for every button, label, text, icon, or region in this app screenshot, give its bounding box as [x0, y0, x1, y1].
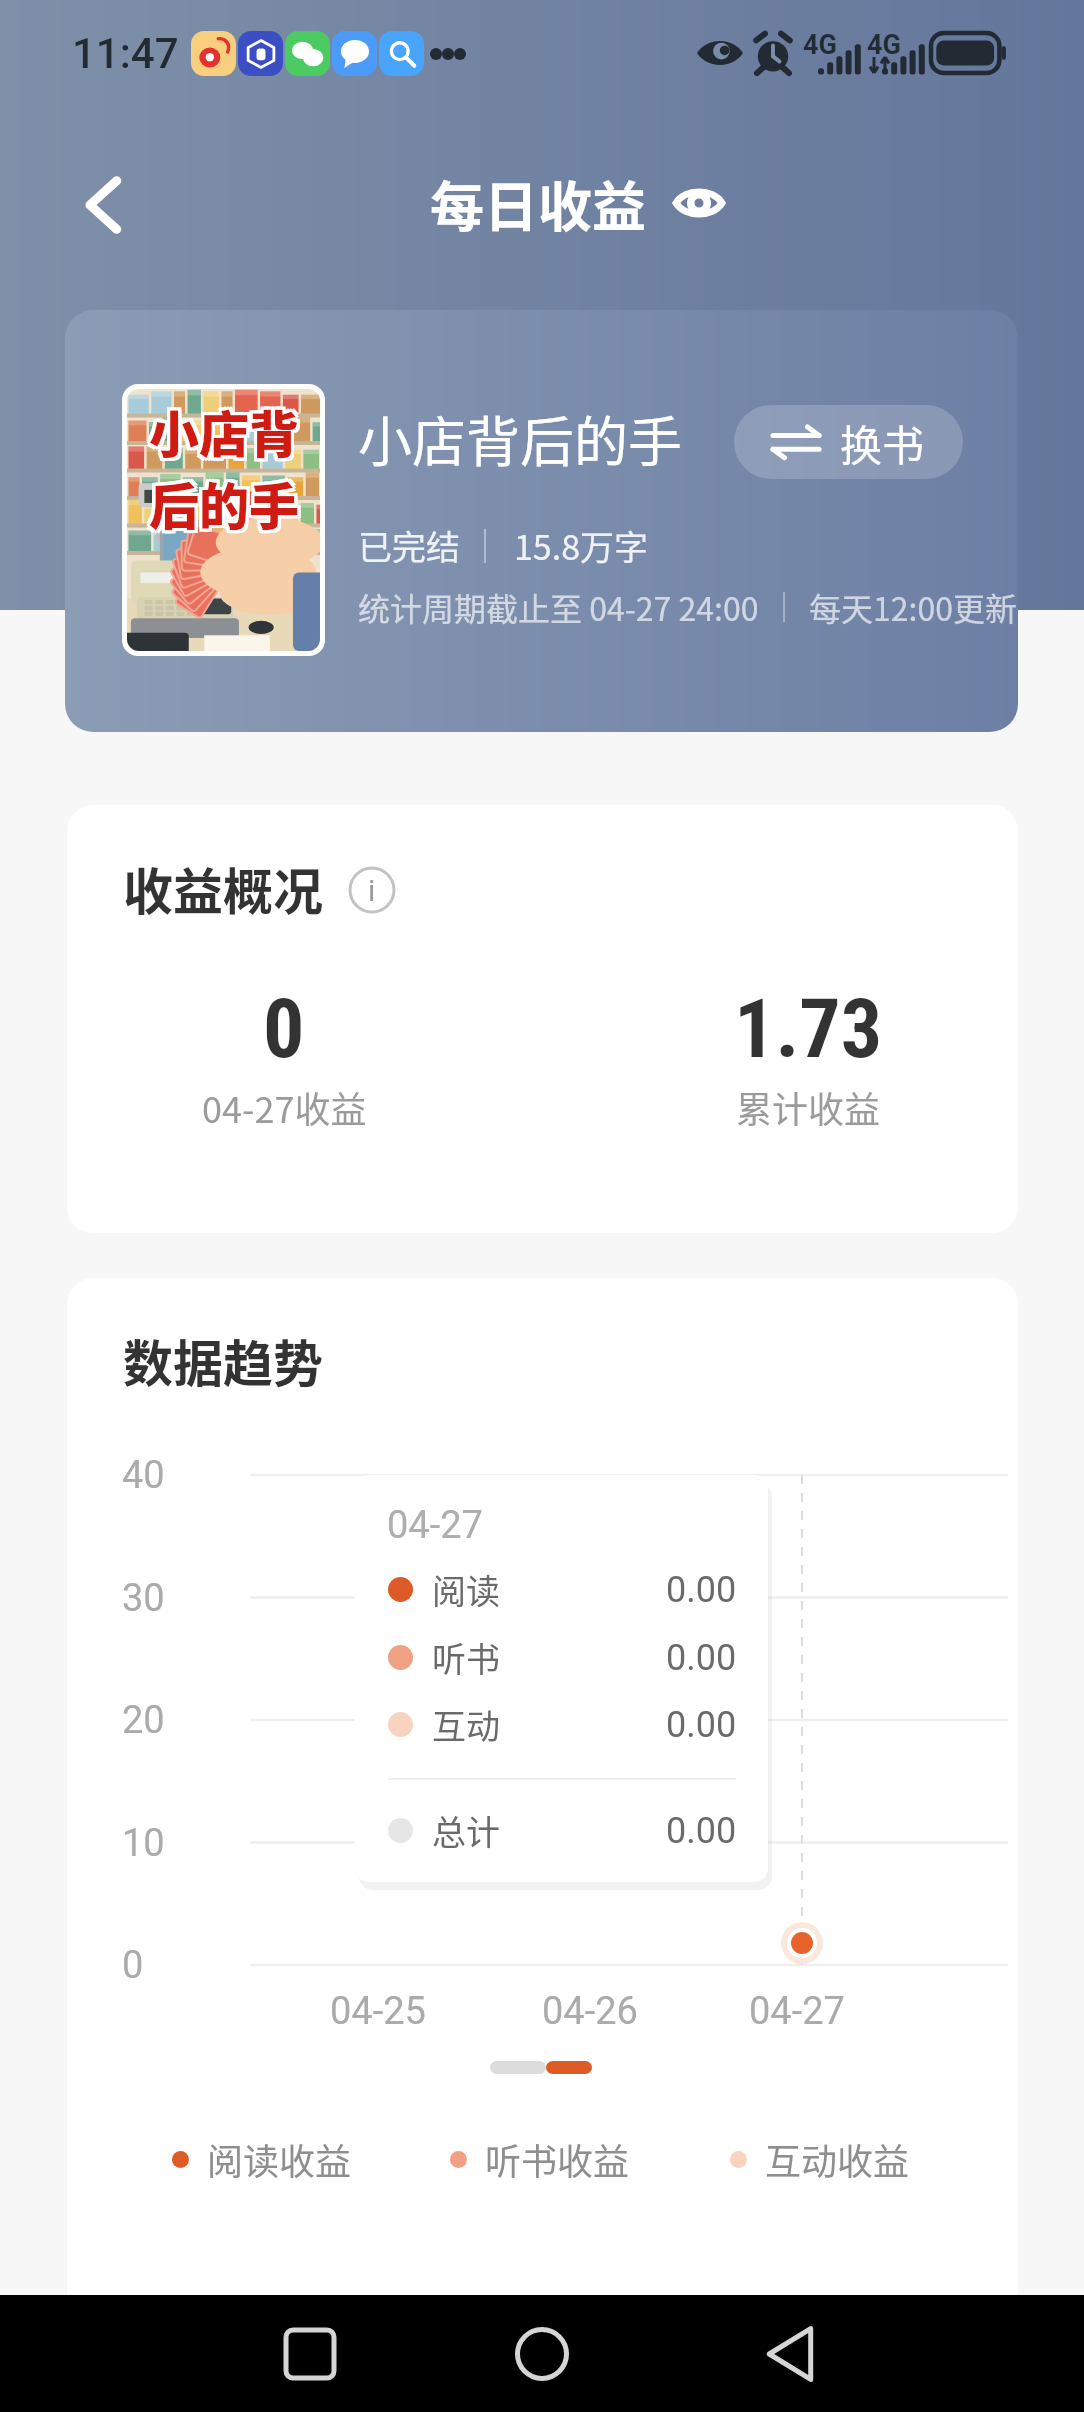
button[interactable]: 小店背 [65, 310, 1018, 732]
staticText: 0.00 [666, 1569, 737, 1611]
staticText: 0.00 [666, 1810, 737, 1852]
staticText: 互动 [432, 1700, 500, 1749]
staticText: 小店背 [149, 395, 299, 467]
button[interactable]: 换书 [734, 405, 963, 479]
staticText: i [368, 873, 376, 908]
button[interactable]: Home [499, 2311, 585, 2397]
staticText: 小店背 [146, 392, 296, 464]
staticText: 0.00 [666, 1704, 737, 1746]
staticText: 15.8万字 [514, 521, 649, 570]
staticText: 4G [803, 29, 837, 61]
staticText: 小店背 [152, 395, 302, 467]
staticText: 40 [122, 1453, 165, 1498]
staticText: 数据趋势 [123, 1324, 323, 1396]
staticText: 后的手 [149, 467, 299, 539]
staticText: 小店背 [149, 392, 299, 464]
staticText: 1.73 [734, 981, 883, 1077]
staticText: 听书收益 [485, 2133, 630, 2185]
staticText: 10 [122, 1821, 165, 1866]
staticText: 04-25 [330, 1989, 426, 2034]
staticText: 04-27 [387, 1503, 483, 1548]
staticText: 阅读收益 [207, 2133, 352, 2185]
staticText: 11:47 [72, 29, 179, 78]
button[interactable]: Back [72, 173, 136, 237]
staticText: 阅读 [432, 1565, 500, 1614]
staticText: 小店背 [149, 398, 299, 470]
staticText: 听书 [432, 1633, 500, 1682]
staticText: 后的手 [152, 467, 302, 539]
button[interactable]: Recent apps [267, 2311, 353, 2397]
staticText: 每天12:00更新 [809, 584, 1017, 630]
staticText: 30 [122, 1576, 165, 1621]
staticText: 互动收益 [765, 2133, 910, 2185]
staticText: 0 [263, 981, 305, 1077]
staticText: 后的手 [152, 464, 302, 536]
staticText: 后的手 [149, 470, 299, 542]
staticText: 后的手 [152, 470, 302, 542]
staticText: 小店背 [146, 398, 296, 470]
staticText: 换书 [840, 412, 925, 473]
staticText: 每日收益 [430, 164, 646, 242]
button[interactable]: Back [747, 2311, 833, 2397]
staticText: 小店背 [152, 392, 302, 464]
staticText: 统计周期截止至 04-27 24:00 [358, 584, 759, 630]
button[interactable]: Toggle earnings visibility [674, 185, 724, 221]
staticText: 已完结 [358, 521, 460, 570]
staticText: 20 [122, 1698, 165, 1743]
staticText: 后的手 [146, 467, 296, 539]
staticText: 累计收益 [736, 1081, 881, 1133]
staticText: 小店背后的手 [358, 399, 682, 477]
staticText: 后的手 [149, 464, 299, 536]
staticText: 后的手 [146, 470, 296, 542]
staticText: 总计 [432, 1806, 500, 1855]
staticText: 后的手 [149, 467, 299, 539]
staticText: 后的手 [146, 464, 296, 536]
staticText: 小店背 [152, 398, 302, 470]
staticText: 04-26 [542, 1989, 638, 2034]
button[interactable]: Earnings info [348, 866, 396, 914]
staticText: 04-27收益 [202, 1081, 367, 1133]
staticText: 收益概况 [123, 852, 323, 924]
staticText: 小店背 [149, 395, 299, 467]
staticText: 0 [122, 1943, 144, 1988]
staticText: 04-27 [749, 1989, 845, 2034]
staticText: 4G [867, 29, 901, 61]
staticText: 小店背 [146, 395, 296, 467]
staticText: 0.00 [666, 1637, 737, 1679]
